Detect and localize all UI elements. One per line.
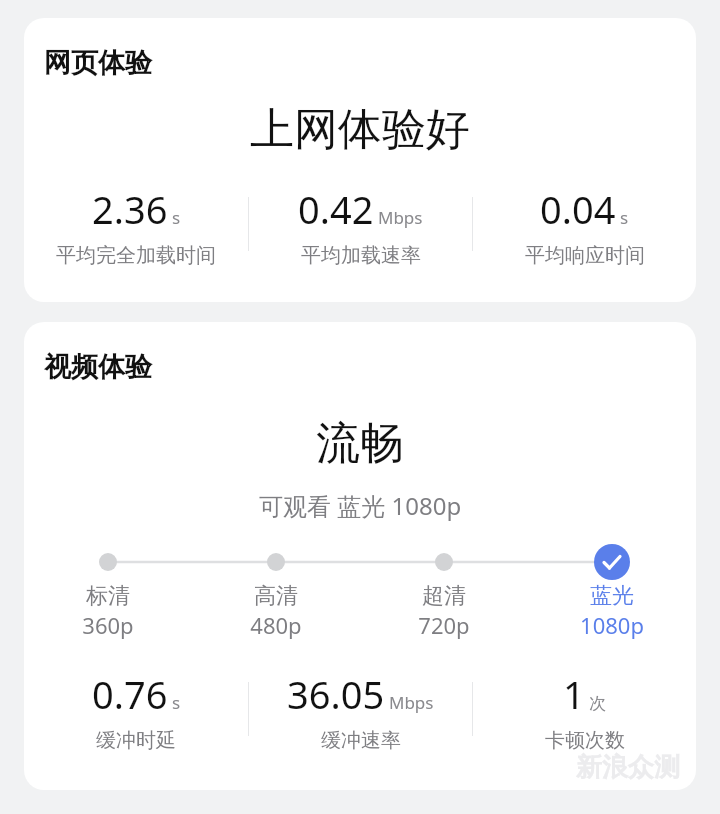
button[interactable]: 高清	[192, 582, 360, 640]
staticText: 0.76	[92, 668, 168, 720]
staticText: 1	[563, 668, 585, 720]
staticText: s	[172, 206, 181, 229]
button[interactable]: 蓝光	[528, 582, 696, 640]
staticText: 次	[589, 693, 606, 714]
button[interactable]: 1	[473, 668, 696, 750]
button[interactable]: 36.05	[249, 668, 472, 750]
staticText: 超清	[422, 582, 466, 610]
staticText: 上网体验好	[250, 102, 470, 157]
staticText: 标清	[86, 582, 130, 610]
staticText: 新浪众测	[576, 751, 680, 784]
button[interactable]: 0.76	[24, 668, 248, 750]
staticText: s	[172, 691, 181, 714]
staticText: 缓冲时延	[96, 728, 176, 750]
staticText: s	[620, 206, 629, 229]
staticText: 网页体验	[44, 46, 152, 80]
button[interactable]: 0.42	[249, 183, 472, 265]
staticText: 2.36	[92, 183, 168, 235]
staticText: 平均加载速率	[301, 243, 421, 265]
staticText: 可观看 蓝光 1080p	[259, 489, 462, 522]
staticText: 高清	[254, 582, 298, 610]
button[interactable]: 网页体验	[24, 18, 696, 302]
staticText: 36.05	[287, 668, 385, 720]
staticText: 卡顿次数	[545, 728, 625, 750]
staticText: 480p	[250, 610, 302, 640]
button[interactable]: 0.04	[473, 183, 696, 265]
staticText: 0.42	[298, 183, 374, 235]
button[interactable]: Video quality level	[24, 544, 696, 580]
staticText: 0.04	[540, 183, 616, 235]
button[interactable]: 2.36	[24, 183, 248, 265]
staticText: 视频体验	[44, 350, 152, 384]
button[interactable]: 视频体验	[24, 322, 696, 790]
staticText: 缓冲速率	[321, 728, 401, 750]
staticText: 蓝光	[590, 582, 634, 610]
staticText: 720p	[418, 610, 470, 640]
staticText: Mbps	[378, 206, 423, 229]
staticText: 360p	[82, 610, 134, 640]
staticText: 流畅	[316, 416, 404, 471]
staticText: 平均响应时间	[525, 243, 645, 265]
staticText: Mbps	[389, 691, 434, 714]
staticText: 1080p	[580, 610, 644, 640]
button[interactable]: 超清	[360, 582, 528, 640]
staticText: 平均完全加载时间	[56, 243, 216, 265]
button[interactable]: 标清	[24, 582, 192, 640]
